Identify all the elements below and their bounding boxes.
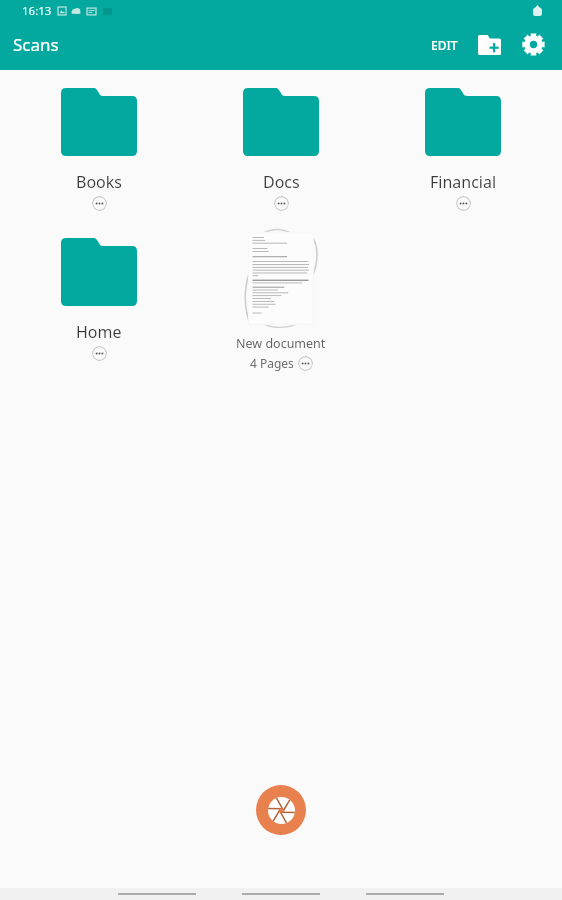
button[interactable]: New folder bbox=[467, 24, 511, 65]
staticText: Books bbox=[76, 171, 122, 193]
staticText: Docs bbox=[263, 171, 300, 193]
button[interactable]: More options bbox=[92, 346, 107, 361]
button[interactable]: Books bbox=[8, 88, 190, 211]
button[interactable]: New document bbox=[190, 238, 372, 371]
button[interactable]: Docs bbox=[190, 88, 372, 211]
button[interactable]: Home bbox=[8, 238, 190, 361]
staticText: Financial bbox=[430, 171, 497, 193]
button[interactable]: More options bbox=[274, 196, 289, 211]
staticText: Scans bbox=[13, 33, 59, 56]
staticText: New document bbox=[236, 335, 326, 352]
button[interactable]: EDIT bbox=[422, 27, 467, 63]
button[interactable]: Financial bbox=[372, 88, 554, 211]
button[interactable]: Settings bbox=[511, 24, 555, 65]
staticText: Home bbox=[76, 321, 122, 343]
button[interactable]: Scan document bbox=[256, 785, 306, 835]
staticText: EDIT bbox=[431, 37, 458, 53]
button[interactable]: More options bbox=[92, 196, 107, 211]
button[interactable]: More options bbox=[298, 356, 313, 371]
button[interactable]: More options bbox=[456, 196, 471, 211]
staticText: 16:13 bbox=[22, 3, 52, 19]
staticText: 4 Pages bbox=[250, 355, 294, 371]
